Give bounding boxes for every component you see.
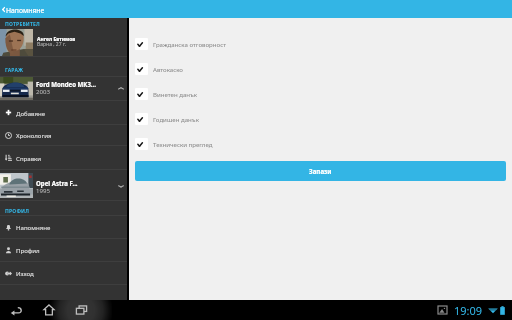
staticText: Профил (16, 246, 40, 254)
staticText: 19:09 (454, 303, 483, 318)
staticText: Справки (16, 154, 42, 162)
staticText: Хронология (16, 131, 52, 139)
button[interactable]: Напомняне (5, 216, 127, 238)
button[interactable]: Годишен данък (134, 106, 512, 131)
staticText: Ангел Евтимов (37, 36, 76, 43)
staticText: Технически преглед (153, 140, 213, 148)
staticText: ПОТРЕБИТЕЛ (5, 21, 40, 28)
button[interactable]: Home (41, 300, 57, 320)
staticText: ПРОФИЛ (5, 208, 30, 215)
staticText: 2003 (36, 87, 50, 95)
button[interactable]: Гражданска отговорност (134, 31, 512, 56)
staticText: Изход (16, 269, 34, 277)
staticText: ГАРАЖ (5, 67, 24, 74)
button[interactable]: Recents (50, 300, 112, 320)
button[interactable]: Винетен данък (134, 81, 512, 106)
button[interactable]: Автокаско (134, 56, 512, 81)
staticText: Запази (309, 167, 332, 175)
staticText: Opel Astra F... (36, 179, 78, 187)
button[interactable]: Хронология (5, 125, 127, 145)
button[interactable]: Ангел Евтимов (0, 29, 127, 56)
button[interactable]: Изход (5, 262, 127, 284)
button[interactable]: Back (0, 3, 6, 15)
button[interactable]: Технически преглед (134, 131, 512, 156)
button[interactable]: Ford Mondeo MK3... (0, 77, 127, 100)
button[interactable]: Opel Astra F... (0, 170, 127, 200)
staticText: 1995 (36, 186, 50, 194)
staticText: Напомняне (16, 223, 51, 231)
staticText: Добавяне (16, 109, 46, 117)
staticText: Варна , 27 г. (37, 41, 67, 48)
button[interactable]: Профил (5, 239, 127, 261)
staticText: Годишен данък (153, 115, 199, 123)
staticText: Винетен данък (153, 90, 198, 98)
button[interactable]: Запази (135, 161, 506, 181)
staticText: Гражданска отговорност (153, 40, 227, 48)
staticText: Напомняне (6, 6, 45, 15)
button[interactable]: Справки (5, 146, 127, 169)
button[interactable]: Добавяне (5, 101, 127, 124)
button[interactable]: Back (8, 300, 24, 320)
staticText: Автокаско (153, 65, 183, 73)
staticText: Ford Mondeo MK3... (36, 80, 97, 88)
